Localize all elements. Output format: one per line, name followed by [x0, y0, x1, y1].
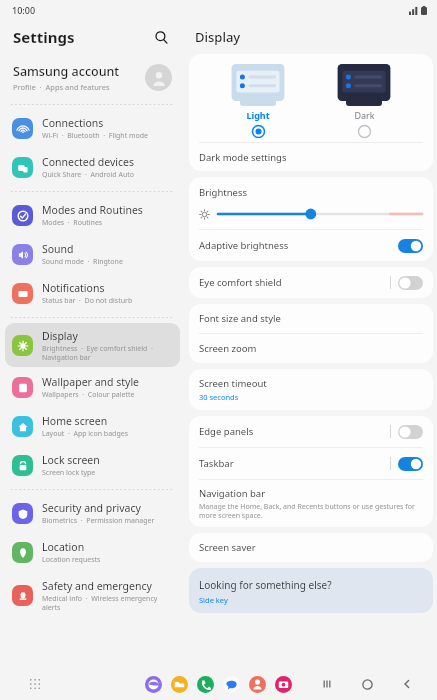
staticText: Profile · Apps and features	[13, 82, 110, 92]
staticText: Samsung account	[13, 63, 120, 80]
staticText: Side key	[199, 595, 228, 605]
staticText: Manage the Home, Back, and Recents butto…	[199, 502, 415, 520]
staticText: Display	[195, 28, 241, 46]
staticText: Navigation bar	[199, 487, 266, 500]
staticText: Location	[42, 540, 85, 554]
button[interactable]: Recents	[317, 674, 337, 694]
button[interactable]: Brightness	[189, 177, 433, 229]
button[interactable]: Lock screen	[5, 447, 180, 484]
staticText: Light	[246, 109, 270, 121]
staticText: Layout · App icon badges	[42, 429, 129, 439]
button[interactable]: Sound	[5, 236, 180, 273]
button[interactable]: Light	[222, 64, 294, 138]
button[interactable]: Edge panels	[189, 416, 433, 447]
button[interactable]: On	[398, 457, 423, 471]
staticText: Lock screen	[42, 453, 100, 467]
button[interactable]: Modes and Routines	[5, 197, 180, 234]
staticText: Eye comfort shield	[199, 276, 390, 289]
button[interactable]: Screen timeout	[189, 369, 433, 410]
button[interactable]: Location	[5, 534, 180, 571]
staticText: Edge panels	[199, 425, 390, 438]
staticText: Wi-Fi · Bluetooth · Flight mode	[42, 131, 149, 141]
button[interactable]: Dark	[328, 64, 400, 138]
staticText: Medical info · Wireless emergency alerts	[42, 594, 158, 612]
button[interactable]: Off	[398, 276, 423, 290]
staticText: Biometrics · Permission manager	[42, 516, 155, 526]
staticText: Screen timeout	[199, 377, 267, 390]
button[interactable]: Display	[5, 323, 180, 367]
button[interactable]: Security and privacy	[5, 495, 180, 532]
button[interactable]: All apps	[24, 673, 46, 695]
staticText: Connected devices	[42, 155, 135, 169]
staticText: Font size and style	[199, 312, 281, 325]
staticText: Home screen	[42, 414, 108, 428]
staticText: Sound mode · Ringtone	[42, 257, 123, 267]
staticText: Brightness · Eye comfort shield · Naviga…	[42, 344, 153, 362]
button[interactable]: Samsung account	[0, 54, 185, 100]
staticText: Screen zoom	[199, 342, 257, 355]
button[interactable]: Eye comfort shield	[189, 267, 433, 298]
button[interactable]: Taskbar	[189, 448, 433, 479]
staticText: Wallpapers · Colour palette	[42, 390, 135, 400]
staticText: Sound	[42, 242, 74, 256]
button[interactable]: Looking for something else?	[189, 568, 433, 613]
button[interactable]: My Files	[171, 676, 188, 693]
button[interactable]: Notifications	[5, 275, 180, 312]
staticText: Looking for something else?	[199, 578, 332, 592]
staticText: Dark	[354, 109, 375, 121]
button[interactable]: Camera	[275, 676, 292, 693]
staticText: Safety and emergency	[42, 579, 152, 593]
button[interactable]: On	[398, 239, 423, 253]
button[interactable]: Off	[398, 425, 423, 439]
button[interactable]: Dark mode settings	[189, 143, 433, 171]
staticText: Screen saver	[199, 541, 256, 554]
staticText: Status bar · Do not disturb	[42, 296, 133, 306]
button[interactable]: Navigation bar	[189, 480, 433, 527]
staticText: Dark mode settings	[199, 151, 287, 164]
staticText: Screen lock type	[42, 468, 96, 478]
staticText: Wallpaper and style	[42, 375, 140, 389]
staticText: Display	[42, 329, 78, 343]
button[interactable]: Search	[149, 25, 173, 49]
staticText: Location requests	[42, 555, 101, 565]
staticText: 10:00	[12, 4, 36, 16]
button[interactable]: Messages	[223, 676, 240, 693]
staticText: Modes · Routines	[42, 218, 103, 228]
button[interactable]: Font size and style	[189, 304, 433, 333]
staticText: Modes and Routines	[42, 203, 143, 217]
staticText: Adaptive brightness	[199, 239, 398, 252]
button[interactable]: Contacts	[249, 676, 266, 693]
button[interactable]: Internet	[145, 676, 162, 693]
button[interactable]: Home	[357, 674, 377, 694]
button[interactable]: Screen zoom	[189, 334, 433, 363]
staticText: Connections	[42, 116, 104, 130]
button[interactable]: Phone	[197, 676, 214, 693]
staticText: 30 seconds	[199, 392, 239, 402]
button[interactable]: Wallpaper and style	[5, 369, 180, 406]
button[interactable]: Connected devices	[5, 149, 180, 186]
button[interactable]: Adaptive brightness	[189, 230, 433, 261]
staticText: Quick Share · Android Auto	[42, 170, 135, 180]
staticText: Notifications	[42, 281, 105, 295]
button[interactable]: Screen saver	[189, 533, 433, 562]
staticText: Settings	[13, 27, 75, 47]
button[interactable]: Connections	[5, 110, 180, 147]
button[interactable]: Safety and emergency	[5, 573, 180, 617]
button[interactable]: Back	[397, 674, 417, 694]
staticText: Security and privacy	[42, 501, 141, 515]
button[interactable]: Home screen	[5, 408, 180, 445]
staticText: Taskbar	[199, 457, 390, 470]
staticText: Brightness	[199, 186, 248, 199]
